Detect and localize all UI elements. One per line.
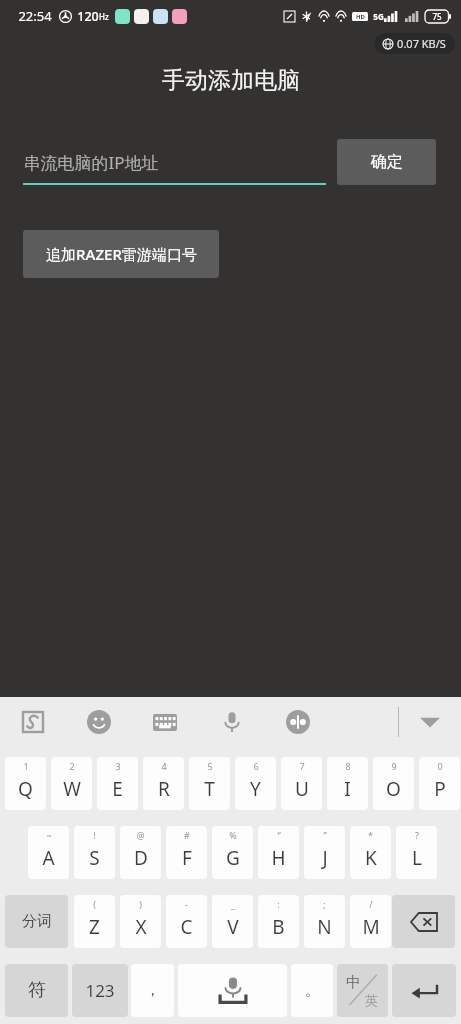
staticText: - — [185, 898, 188, 910]
staticText: ) — [139, 898, 142, 910]
staticText: / — [369, 898, 373, 910]
staticText: 中 — [346, 973, 361, 992]
staticText: 75 — [432, 11, 442, 22]
button[interactable]: 追加RAZER雷游端口号 — [23, 230, 219, 278]
staticText: @ — [136, 829, 145, 841]
staticText: S — [89, 845, 100, 871]
staticText: 6 — [253, 760, 259, 772]
button[interactable]: 3 — [97, 757, 138, 810]
staticText: 3 — [115, 760, 121, 772]
staticText: 确定 — [371, 152, 403, 172]
button[interactable]: : — [258, 895, 299, 948]
button[interactable]: 串流电脑的IP地址 — [23, 139, 326, 185]
button[interactable]: ” — [304, 826, 345, 879]
staticText: 22:54 — [18, 7, 52, 25]
button[interactable]: 收起键盘 — [412, 704, 448, 740]
button[interactable]: 1 — [5, 757, 46, 810]
staticText: # — [184, 829, 190, 841]
button[interactable]: 符 — [5, 964, 68, 1017]
staticText: 串流电脑的IP地址 — [23, 151, 159, 174]
button[interactable]: 中英切换 — [337, 964, 388, 1017]
staticText: N — [317, 914, 332, 940]
button[interactable]: ， — [131, 964, 174, 1017]
staticText: H — [271, 845, 286, 871]
button[interactable]: “ — [258, 826, 299, 879]
staticText: 追加RAZER雷游端口号 — [46, 244, 197, 264]
button[interactable]: 8 — [327, 757, 368, 810]
button[interactable]: 6 — [235, 757, 276, 810]
button[interactable]: 工具 — [81, 704, 117, 740]
button[interactable]: % — [212, 826, 253, 879]
staticText: 符 — [28, 979, 46, 1002]
button[interactable]: @ — [120, 826, 161, 879]
staticText: V — [227, 914, 239, 940]
staticText: 8 — [345, 760, 351, 772]
staticText: ; — [323, 898, 326, 910]
staticText: % — [229, 829, 237, 841]
staticText: U — [295, 776, 309, 802]
staticText: I — [344, 776, 351, 802]
staticText: R — [158, 776, 170, 802]
staticText: O — [386, 776, 401, 802]
button[interactable]: 工具 — [280, 704, 316, 740]
button[interactable]: 分词 — [5, 895, 68, 948]
staticText: 手动添加电脑 — [162, 66, 300, 95]
button[interactable]: 0 — [419, 757, 460, 810]
button[interactable]: ~ — [28, 826, 69, 879]
button[interactable]: 回车 — [392, 964, 456, 1017]
button[interactable]: ( — [74, 895, 115, 948]
staticText: J — [322, 845, 328, 871]
staticText: T — [204, 776, 215, 802]
staticText: 1 — [23, 760, 29, 772]
staticText: D — [134, 845, 148, 871]
button[interactable]: - — [166, 895, 207, 948]
staticText: M — [362, 914, 380, 940]
button[interactable]: ) — [120, 895, 161, 948]
staticText: ， — [145, 981, 160, 1000]
button[interactable]: _ — [212, 895, 253, 948]
button[interactable]: ! — [74, 826, 115, 879]
staticText: E — [112, 776, 123, 802]
staticText: P — [434, 776, 446, 802]
staticText: ( — [93, 898, 96, 910]
button[interactable]: 退格 — [392, 895, 455, 948]
staticText: A — [42, 845, 55, 871]
staticText: 9 — [391, 760, 397, 772]
button[interactable]: 空格 — [178, 964, 287, 1017]
staticText: 2 — [69, 760, 75, 772]
button[interactable]: 工具 — [147, 704, 183, 740]
staticText: ! — [93, 829, 96, 841]
button[interactable]: ; — [304, 895, 345, 948]
staticText: _ — [231, 898, 235, 910]
button[interactable]: 4 — [143, 757, 184, 810]
staticText: 5G — [373, 11, 384, 22]
button[interactable]: # — [166, 826, 207, 879]
button[interactable]: 2 — [51, 757, 92, 810]
button[interactable]: ? — [396, 826, 437, 879]
staticText: X — [135, 914, 147, 940]
staticText: B — [272, 914, 285, 940]
staticText: : — [277, 898, 280, 910]
button[interactable]: 确定 — [337, 139, 436, 185]
staticText: W — [63, 776, 81, 802]
staticText: 分词 — [22, 912, 52, 931]
button[interactable]: * — [350, 826, 391, 879]
staticText: 。 — [305, 982, 319, 1000]
button[interactable]: 5 — [189, 757, 230, 810]
button[interactable]: 9 — [373, 757, 414, 810]
staticText: ~ — [46, 829, 52, 841]
button[interactable]: 7 — [281, 757, 322, 810]
button[interactable]: 输入法 — [18, 707, 48, 737]
button[interactable]: 123 — [72, 964, 128, 1017]
staticText: Q — [18, 776, 33, 802]
button[interactable]: 。 — [291, 964, 333, 1017]
staticText: HD — [356, 13, 365, 21]
staticText: 4 — [161, 760, 167, 772]
staticText: L — [412, 845, 422, 871]
staticText: F — [182, 845, 192, 871]
staticText: ? — [415, 829, 419, 841]
button[interactable]: 工具 — [214, 704, 250, 740]
staticText: C — [180, 914, 193, 940]
button[interactable]: / — [350, 895, 391, 948]
staticText: G — [226, 845, 240, 871]
